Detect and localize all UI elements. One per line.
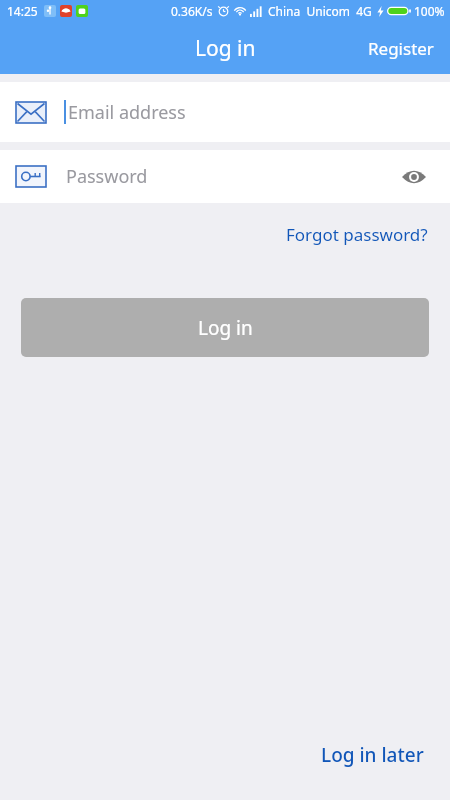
button[interactable]: Log in xyxy=(21,298,429,357)
button[interactable]: Show password xyxy=(394,157,434,197)
button[interactable]: Log in later xyxy=(317,736,428,774)
button[interactable]: Register xyxy=(352,22,450,74)
staticText: Forgot password? xyxy=(286,223,428,246)
staticText: Password xyxy=(66,164,148,189)
staticText: 100% xyxy=(414,3,445,19)
button[interactable]: Email address xyxy=(0,82,450,142)
staticText: Email address xyxy=(68,100,186,125)
staticText: 14:25 xyxy=(7,3,38,19)
staticText: Log in xyxy=(195,34,256,63)
button[interactable]: Forgot password? xyxy=(282,217,432,252)
staticText: Log in later xyxy=(321,742,424,768)
staticText: 0.36K/s xyxy=(171,3,213,19)
staticText: Register xyxy=(368,37,434,60)
button[interactable]: Password xyxy=(0,150,450,203)
staticText: Log in xyxy=(198,315,253,341)
staticText: China Unicom 4G xyxy=(268,3,372,19)
